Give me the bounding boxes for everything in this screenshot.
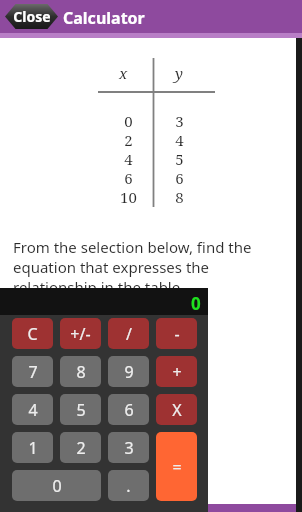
button[interactable]: 6 bbox=[108, 394, 149, 425]
staticText: - bbox=[174, 323, 180, 345]
staticText: 8 bbox=[76, 361, 86, 383]
staticText: 2 bbox=[124, 130, 133, 150]
button[interactable]: C bbox=[12, 318, 53, 349]
button[interactable]: 2 bbox=[60, 432, 101, 463]
staticText: x bbox=[119, 63, 128, 83]
staticText: 6 bbox=[175, 168, 184, 188]
staticText: 4 bbox=[124, 149, 133, 169]
staticText: From the selection below, find the equat… bbox=[13, 237, 288, 297]
staticText: 5 bbox=[76, 399, 86, 421]
staticText: 6 bbox=[124, 399, 134, 421]
button[interactable]: - bbox=[156, 318, 197, 349]
staticText: 9 bbox=[124, 361, 134, 383]
button[interactable]: 4 bbox=[12, 394, 53, 425]
staticText: 2 bbox=[76, 437, 86, 459]
button[interactable]: 3 bbox=[108, 432, 149, 463]
button[interactable]: X bbox=[156, 394, 197, 425]
button[interactable]: 0 bbox=[12, 470, 101, 501]
staticText: . bbox=[126, 475, 131, 497]
staticText: y bbox=[175, 63, 183, 83]
staticText: 0 bbox=[52, 475, 62, 497]
staticText: 6 bbox=[124, 168, 133, 188]
staticText: 7 bbox=[28, 361, 38, 383]
staticText: + bbox=[172, 361, 182, 383]
staticText: / bbox=[126, 323, 132, 345]
staticText: 3 bbox=[124, 437, 134, 459]
button[interactable]: / bbox=[108, 318, 149, 349]
staticText: 8 bbox=[175, 187, 184, 207]
button[interactable]: +/- bbox=[60, 318, 101, 349]
staticText: 10 bbox=[120, 187, 137, 207]
button[interactable]: 9 bbox=[108, 356, 149, 387]
button[interactable]: 7 bbox=[12, 356, 53, 387]
staticText: 0 bbox=[124, 111, 133, 131]
button[interactable]: Close bbox=[5, 4, 58, 29]
button[interactable]: 1 bbox=[12, 432, 53, 463]
button[interactable]: + bbox=[156, 356, 197, 387]
staticText: +/- bbox=[70, 323, 91, 345]
staticText: 1 bbox=[28, 437, 38, 459]
button[interactable]: = bbox=[156, 432, 197, 501]
staticText: Calculator bbox=[63, 7, 145, 29]
staticText: X bbox=[172, 399, 182, 421]
staticText: Close bbox=[13, 7, 51, 26]
staticText: 4 bbox=[175, 130, 184, 150]
staticText: 4 bbox=[28, 399, 38, 421]
button[interactable]: 8 bbox=[60, 356, 101, 387]
staticText: C bbox=[27, 323, 38, 345]
staticText: 5 bbox=[175, 149, 184, 169]
button[interactable]: 5 bbox=[60, 394, 101, 425]
button[interactable]: . bbox=[108, 470, 149, 501]
staticText: 3 bbox=[175, 111, 184, 131]
staticText: = bbox=[172, 456, 182, 478]
staticText: 0 bbox=[191, 292, 201, 315]
